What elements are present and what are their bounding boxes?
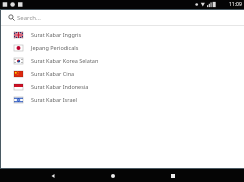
staticText: Surat Kabar Israel: [31, 96, 78, 103]
button[interactable]: Home: [106, 169, 120, 182]
button[interactable]: Surat Kabar Cina: [1, 67, 244, 80]
button[interactable]: Search...: [1, 10, 244, 25]
staticText: 11:09: [229, 1, 242, 8]
button[interactable]: Recent apps: [166, 169, 180, 182]
staticText: Surat Kabar Indonesia: [31, 83, 89, 90]
button[interactable]: Surat Kabar Inggris: [1, 28, 244, 41]
staticText: Jepang Periodicals: [31, 44, 79, 51]
staticText: Surat Kabar Korea Selatan: [31, 57, 99, 64]
staticText: Search...: [17, 14, 41, 22]
button[interactable]: Surat Kabar Korea Selatan: [1, 54, 244, 67]
staticText: Surat Kabar Cina: [31, 70, 75, 77]
button[interactable]: Jepang Periodicals: [1, 41, 244, 54]
button[interactable]: Surat Kabar Indonesia: [1, 80, 244, 93]
button[interactable]: Surat Kabar Israel: [1, 93, 244, 106]
staticText: Surat Kabar Inggris: [31, 31, 82, 38]
button[interactable]: Back: [46, 169, 60, 182]
